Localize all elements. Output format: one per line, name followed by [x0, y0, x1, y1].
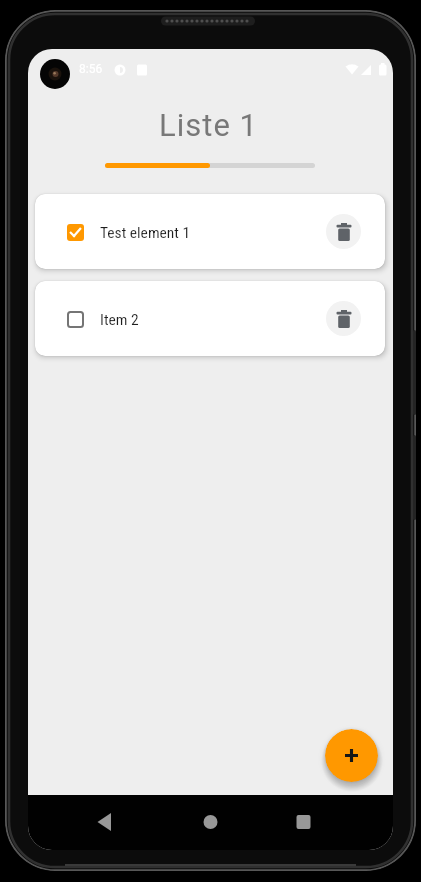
button[interactable]	[325, 729, 378, 782]
staticText: Liste 1	[159, 107, 258, 143]
button[interactable]	[67, 311, 84, 328]
staticText: 8:56	[79, 62, 103, 76]
button[interactable]: Item 2	[35, 281, 385, 356]
button[interactable]	[67, 224, 84, 241]
button[interactable]	[326, 214, 361, 249]
button[interactable]: Test element 1	[35, 194, 385, 269]
button[interactable]	[326, 301, 361, 336]
staticText: Test element 1	[100, 224, 191, 242]
staticText: Item 2	[100, 311, 139, 329]
